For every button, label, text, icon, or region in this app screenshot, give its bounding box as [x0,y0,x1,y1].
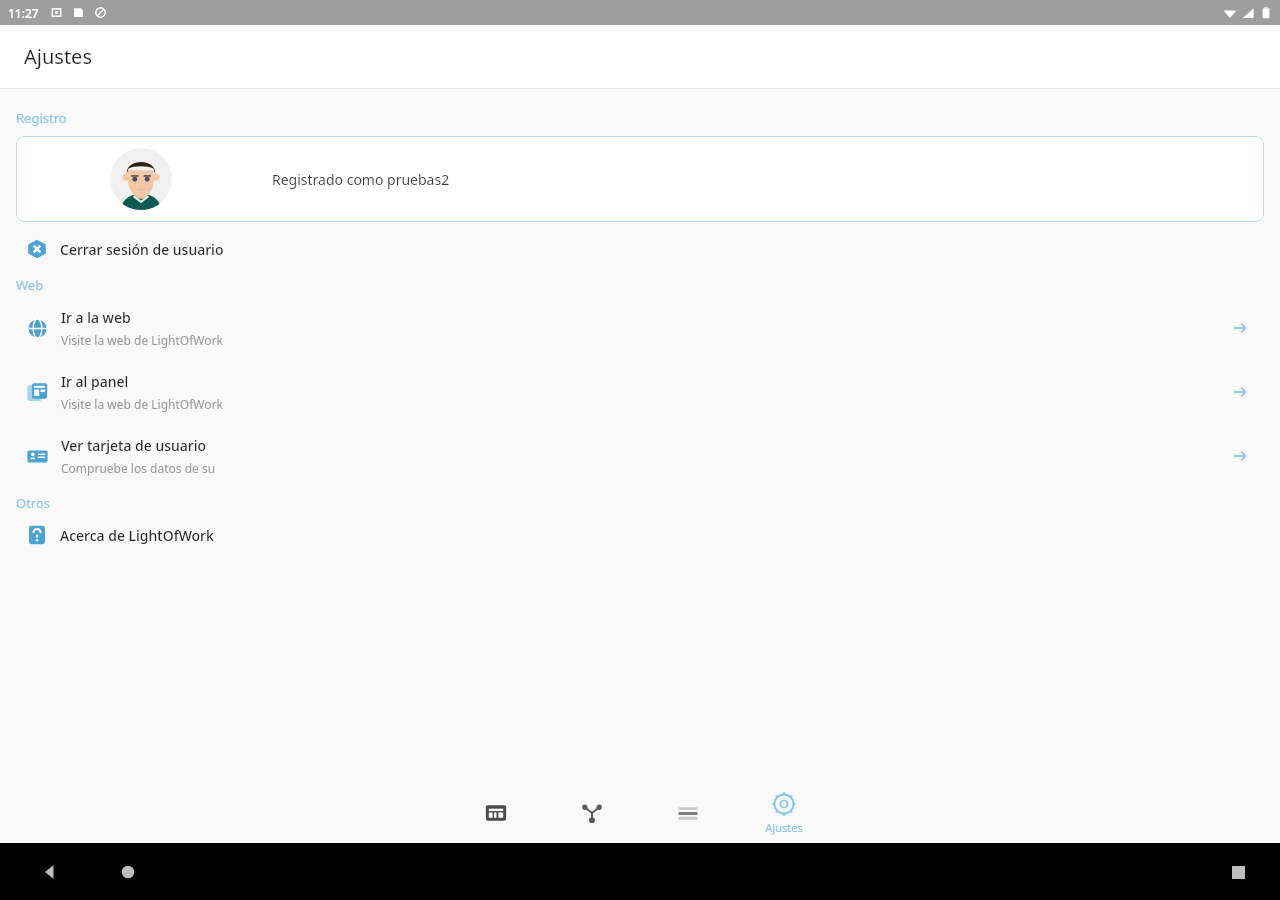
button[interactable]: Listado [640,787,736,839]
other: Web [27,318,48,339]
staticText: Ajustes [765,820,803,835]
other: Acerca de [27,525,47,545]
button[interactable]: Cerrar sesión [0,234,1280,264]
staticText: Registro [16,109,67,127]
button[interactable]: Atrás [32,854,68,890]
button[interactable]: Ajustes [736,787,832,839]
staticText: Compruebe los datos de su [61,460,216,476]
staticText: Ir al panel [61,372,129,391]
staticText: Acerca de LightOfWork [60,526,214,545]
button[interactable]: Acerca de [0,520,1280,550]
button[interactable]: Panel [0,366,1280,418]
other: Abrir Ver tarjeta de usuario [1230,446,1250,466]
other: Abrir Ir al panel [1230,382,1250,402]
staticText: Registrado como pruebas2 [272,170,450,189]
staticText: Web [16,276,44,294]
button[interactable]: Registrado como pruebas2 [16,136,1264,222]
other: Abrir Ir a la web [1230,318,1250,338]
staticText: Ajustes [24,43,92,70]
staticText: Visite la web de LightOfWork [61,396,223,412]
staticText: Otros [16,494,51,512]
staticText: Ver tarjeta de usuario [61,436,207,455]
other: Panel [27,382,48,403]
button[interactable]: Fichajes [448,787,544,839]
other: Tarjeta de usuario [27,446,48,467]
staticText: 11:27 [8,5,39,21]
staticText: Visite la web de LightOfWork [61,332,223,348]
staticText: Cerrar sesión de usuario [60,240,224,259]
button[interactable]: Web [0,302,1280,354]
button[interactable]: Inicio [110,854,146,890]
button[interactable]: Recientes [1220,854,1256,890]
staticText: Ir a la web [61,308,131,327]
button[interactable]: Tarjeta de usuario [0,430,1280,482]
button[interactable]: Organización [544,787,640,839]
other: Cerrar sesión [27,239,47,259]
